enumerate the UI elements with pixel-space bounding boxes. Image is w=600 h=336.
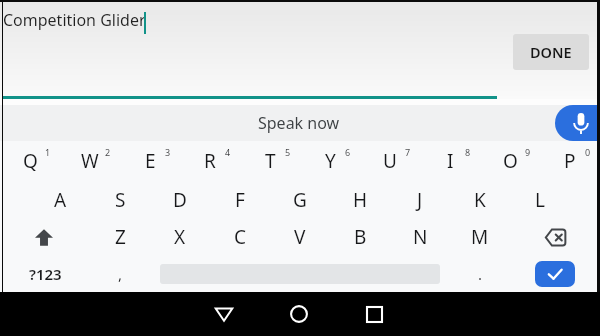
staticText: F (235, 187, 245, 213)
button[interactable]: L (510, 181, 570, 219)
staticText: Q (23, 148, 38, 174)
button[interactable]: Y (300, 141, 360, 181)
button[interactable]: D (150, 181, 210, 219)
staticText: A (54, 187, 67, 213)
staticText: H (353, 187, 368, 213)
button[interactable]: X (150, 218, 210, 256)
button[interactable]: Back (199, 292, 249, 336)
staticText: G (293, 187, 307, 213)
staticText: K (474, 187, 486, 213)
staticText: , (118, 264, 123, 284)
button[interactable]: Q (0, 141, 60, 181)
staticText: 3 (165, 146, 171, 158)
staticText: S (115, 187, 126, 213)
staticText: U (383, 148, 397, 174)
button[interactable]: W (60, 141, 120, 181)
button[interactable]: Recents (349, 292, 399, 336)
button[interactable]: C (210, 218, 270, 256)
staticText: DONE (530, 42, 572, 62)
staticText: 1 (45, 146, 51, 158)
button[interactable]: J (390, 181, 450, 219)
staticText: B (354, 224, 367, 250)
staticText: Competition Glider (3, 9, 146, 31)
button[interactable]: A (30, 181, 90, 219)
button[interactable]: Home (274, 292, 324, 336)
button[interactable]: . (455, 255, 505, 292)
button[interactable]: I (420, 141, 480, 181)
button[interactable]: U (360, 141, 420, 181)
staticText: 4 (225, 146, 231, 158)
staticText: N (413, 224, 428, 250)
button[interactable]: H (330, 181, 390, 219)
staticText: 0 (585, 146, 591, 158)
button[interactable]: F (210, 181, 270, 219)
staticText: T (265, 148, 276, 174)
button[interactable]: O (480, 141, 540, 181)
button[interactable]: M (450, 218, 510, 256)
staticText: M (471, 224, 489, 250)
button[interactable]: , (95, 255, 145, 292)
staticText: 6 (345, 146, 351, 158)
button[interactable]: Shift (19, 218, 69, 256)
staticText: ?123 (29, 264, 62, 284)
staticText: 8 (465, 146, 471, 158)
staticText: 9 (525, 146, 531, 158)
button[interactable]: N (390, 218, 450, 256)
staticText: C (234, 224, 247, 250)
staticText: 2 (105, 146, 111, 158)
button[interactable]: DONE (513, 34, 589, 70)
staticText: J (417, 187, 423, 213)
staticText: Speak now (258, 112, 340, 134)
staticText: I (447, 148, 454, 174)
button[interactable]: V (270, 218, 330, 256)
staticText: D (173, 187, 187, 213)
staticText: R (204, 148, 216, 174)
button[interactable]: S (90, 181, 150, 219)
staticText: 5 (285, 146, 291, 158)
button[interactable]: Z (90, 218, 150, 256)
staticText: Y (325, 148, 336, 174)
staticText: Z (115, 224, 126, 250)
staticText: P (564, 148, 576, 174)
button[interactable]: P (540, 141, 600, 181)
button[interactable]: Backspace (530, 218, 580, 256)
staticText: 7 (405, 146, 411, 158)
button[interactable]: Enter (535, 261, 575, 287)
button[interactable]: B (330, 218, 390, 256)
staticText: X (174, 224, 186, 250)
button[interactable]: E (120, 141, 180, 181)
staticText: L (535, 187, 545, 213)
button[interactable]: R (180, 141, 240, 181)
button[interactable]: T (240, 141, 300, 181)
staticText: . (478, 264, 483, 284)
staticText: W (81, 148, 99, 174)
staticText: V (294, 224, 306, 250)
button[interactable]: ?123 (15, 255, 75, 292)
button[interactable]: G (270, 181, 330, 219)
button[interactable]: Voice input (555, 105, 600, 141)
staticText: O (503, 148, 518, 174)
staticText: E (145, 148, 156, 174)
button[interactable]: K (450, 181, 510, 219)
